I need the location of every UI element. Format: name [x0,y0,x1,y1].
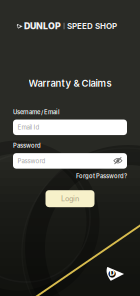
button[interactable]: Login [45,190,94,207]
staticText: Forgot Password? [76,173,127,180]
staticText: D [110,268,115,278]
staticText: Email Id [18,124,40,131]
staticText: Password [18,157,46,165]
staticText: Warranty & Claims [28,77,111,89]
staticText: SPEED SHOP [67,21,117,31]
staticText: Password [13,142,41,149]
button[interactable]: Forgot Password? [76,173,127,180]
staticText: DUNLOP [24,21,61,31]
staticText: Username / Email [13,108,60,116]
staticText: Login [61,194,79,203]
